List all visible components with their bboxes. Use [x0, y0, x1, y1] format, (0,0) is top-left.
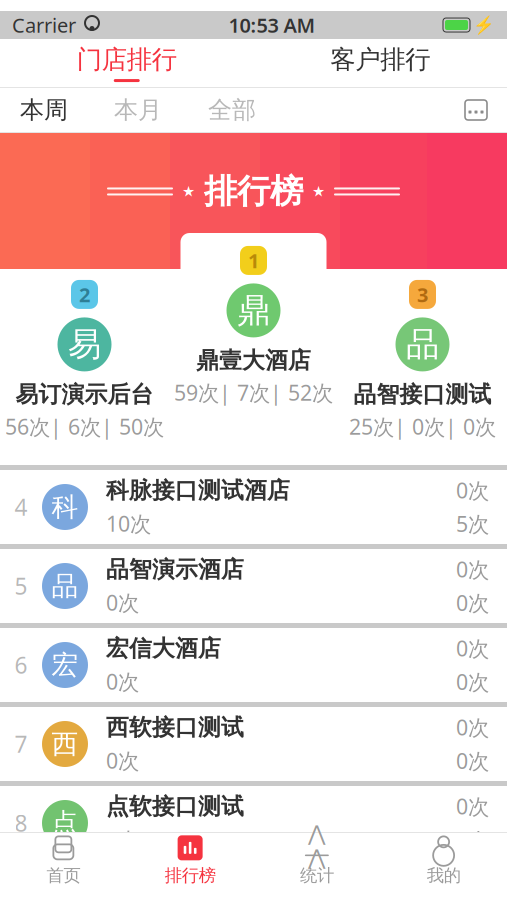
staticText: 0次: [456, 667, 489, 696]
staticText: 8: [14, 808, 27, 838]
staticText: 4: [14, 492, 27, 522]
staticText: ⋀⋀: [308, 821, 326, 869]
staticText: 0次: [106, 588, 139, 617]
button[interactable]: 我的: [380, 833, 507, 889]
staticText: 56次| 6次| 50次: [5, 412, 164, 441]
staticText: 点: [51, 807, 78, 839]
button[interactable]: 5: [0, 549, 507, 628]
staticText: 西软接口测试: [106, 713, 244, 741]
staticText: 品智接口测试: [353, 380, 491, 408]
staticText: 5: [14, 571, 27, 601]
staticText: 0次: [106, 825, 139, 854]
staticText: 科: [51, 491, 78, 523]
staticText: 点软接口测试: [106, 792, 244, 820]
staticText: 0次: [456, 634, 489, 662]
staticText: 3: [417, 281, 428, 308]
staticText: 0次: [456, 588, 489, 617]
staticText: 7: [14, 729, 27, 759]
button[interactable]: 排行榜: [127, 833, 254, 889]
button[interactable]: 本周: [16, 88, 72, 132]
staticText: 首页: [46, 865, 80, 886]
staticText: 0次: [456, 792, 489, 820]
button[interactable]: 6: [0, 628, 507, 707]
staticText: 本周: [20, 95, 68, 125]
staticText: 门店排行: [77, 44, 177, 75]
staticText: 0次: [456, 825, 489, 854]
staticText: 1: [248, 247, 259, 274]
staticText: 0次: [456, 555, 489, 583]
staticText: 易: [68, 324, 101, 365]
staticText: 2: [79, 281, 90, 308]
staticText: 易订演示后台: [15, 380, 153, 408]
button[interactable]: ⋀⋀: [253, 833, 380, 889]
staticText: 客户排行: [330, 44, 430, 75]
staticText: 25次| 0次| 0次: [349, 412, 496, 441]
staticText: ★: [312, 183, 325, 200]
staticText: 科脉接口测试酒店: [106, 476, 290, 504]
staticText: 0次: [106, 667, 139, 696]
staticText: 本月: [114, 95, 162, 125]
staticText: 0次: [456, 713, 489, 741]
staticText: 10次: [106, 509, 151, 538]
button[interactable]: 7: [0, 707, 507, 786]
staticText: ★: [182, 183, 195, 200]
button[interactable]: 本月: [110, 88, 166, 132]
staticText: ⚡: [473, 15, 495, 35]
staticText: 统计: [300, 865, 334, 886]
button[interactable]: 选择日期: [459, 93, 493, 127]
staticText: 0次: [106, 746, 139, 775]
staticText: 全部: [208, 95, 256, 125]
button[interactable]: 客户排行: [253, 39, 507, 87]
staticText: 鼎壹大酒店: [196, 346, 311, 374]
staticText: 排行榜: [204, 171, 303, 212]
staticText: 59次| 7次| 52次: [174, 378, 333, 407]
staticText: 5次: [456, 509, 489, 538]
button[interactable]: 全部: [204, 88, 260, 132]
staticText: 排行榜: [165, 865, 216, 886]
button[interactable]: 4: [0, 470, 507, 549]
staticText: 品: [51, 570, 78, 602]
staticText: 0次: [456, 476, 489, 504]
button[interactable]: 门店排行: [0, 39, 253, 87]
staticText: 品: [406, 324, 439, 365]
staticText: 0次: [456, 746, 489, 775]
staticText: 宏: [51, 649, 78, 681]
staticText: 鼎: [237, 290, 270, 331]
staticText: 6: [14, 650, 27, 680]
button[interactable]: 8: [0, 786, 507, 865]
staticText: 西: [51, 728, 78, 760]
staticText: Carrier: [12, 12, 76, 38]
staticText: 宏信大酒店: [106, 634, 221, 662]
staticText: 我的: [427, 865, 461, 886]
staticText: 10:53 AM: [228, 12, 315, 38]
button[interactable]: 首页: [0, 833, 127, 889]
staticText: 品智演示酒店: [106, 555, 244, 583]
